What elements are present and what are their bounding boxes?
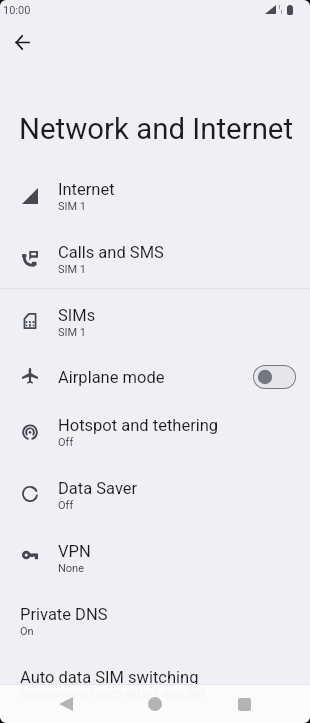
button[interactable]: VPN xyxy=(0,531,310,594)
staticText: On xyxy=(20,625,34,638)
staticText: Internet xyxy=(58,180,115,199)
staticText: VPN xyxy=(58,542,91,561)
staticText: Network and Internet xyxy=(19,112,294,146)
staticText: SIMs xyxy=(58,306,96,325)
button[interactable]: Recent apps xyxy=(227,687,261,721)
staticText: Off xyxy=(58,499,74,512)
button[interactable]: Data Saver xyxy=(0,468,310,531)
button[interactable]: Airplane mode xyxy=(253,365,296,389)
staticText: SIM 1 xyxy=(58,263,87,276)
button[interactable]: Calls and SMS xyxy=(0,232,310,295)
button[interactable]: Private DNS xyxy=(0,594,310,657)
button[interactable]: Back xyxy=(49,687,83,721)
staticText: Off xyxy=(58,436,74,449)
button[interactable]: Auto data SIM switching xyxy=(0,657,310,720)
button[interactable]: Hotspot and tethering xyxy=(0,406,310,468)
button[interactable]: SIMs xyxy=(0,295,310,358)
staticText: 10:00 xyxy=(3,4,31,17)
button[interactable]: Internet xyxy=(0,169,310,232)
staticText: SIM 1 xyxy=(58,200,87,213)
staticText: None xyxy=(58,562,85,575)
staticText: Data Saver xyxy=(58,479,138,498)
staticText: SIM 1 xyxy=(58,326,87,339)
button[interactable]: Airplane mode xyxy=(0,358,310,406)
staticText: Calls and SMS xyxy=(58,243,164,262)
staticText: Automatically switch default data SIM xyxy=(20,688,206,701)
staticText: Auto data SIM switching xyxy=(20,668,199,687)
staticText: Airplane mode xyxy=(58,368,165,387)
staticText: Hotspot and tethering xyxy=(58,416,219,435)
staticText: Private DNS xyxy=(20,605,108,624)
button[interactable]: Navigate up xyxy=(7,27,38,58)
button[interactable]: Home xyxy=(138,687,172,721)
